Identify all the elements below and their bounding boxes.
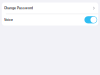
button[interactable]: Voice	[84, 16, 97, 23]
staticText: Change Password	[4, 6, 33, 10]
staticText: Voice	[4, 18, 13, 22]
button[interactable]: Change Password	[2, 2, 98, 14]
